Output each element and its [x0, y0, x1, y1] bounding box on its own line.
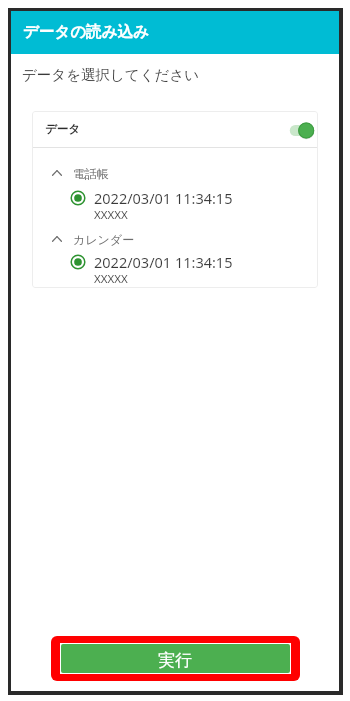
staticText: カレンダー — [73, 232, 135, 247]
staticText: データ — [45, 122, 81, 136]
staticText: 2022/03/01 11:34:15 — [94, 188, 233, 208]
staticText: XXXXX — [94, 271, 128, 287]
button[interactable]: 電話帳 — [33, 162, 317, 184]
staticText: 実行 — [158, 650, 192, 671]
button[interactable]: データの読み込みを有効にする — [286, 119, 318, 142]
staticText: 2022/03/01 11:34:15 — [94, 252, 233, 272]
staticText: データを選択してください — [22, 66, 200, 84]
button[interactable]: 2022/03/01 11:34:15 — [33, 188, 317, 220]
staticText: データの読み込み — [23, 22, 149, 42]
button[interactable]: 実行 — [61, 644, 290, 673]
staticText: 電話帳 — [73, 166, 109, 181]
button[interactable]: カレンダー — [33, 228, 317, 250]
button[interactable]: 2022/03/01 11:34:15 — [33, 252, 317, 284]
button[interactable]: データ — [33, 112, 317, 147]
staticText: XXXXX — [94, 207, 128, 223]
